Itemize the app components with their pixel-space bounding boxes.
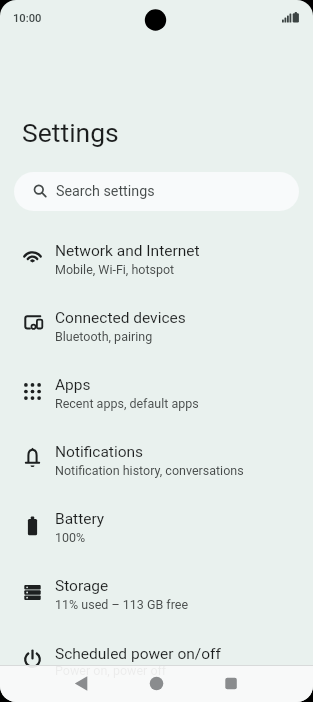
staticText: Storage: [55, 577, 109, 595]
button[interactable]: Storage: [0, 561, 313, 628]
staticText: Power on, power off: [55, 663, 167, 678]
staticText: Search settings: [56, 183, 155, 200]
button[interactable]: Search settings: [14, 172, 299, 211]
staticText: Apps: [55, 376, 91, 394]
staticText: Scheduled power on/off: [55, 645, 221, 663]
button[interactable]: [0, 665, 105, 702]
staticText: 10:00: [13, 12, 42, 25]
button[interactable]: Apps: [0, 360, 313, 427]
button[interactable]: Battery: [0, 494, 313, 561]
button[interactable]: [209, 665, 313, 702]
button[interactable]: [105, 665, 209, 702]
staticText: Network and Internet: [55, 242, 200, 260]
staticText: Recent apps, default apps: [55, 396, 199, 411]
staticText: Connected devices: [55, 309, 186, 327]
staticText: Settings: [22, 117, 119, 148]
staticText: 100%: [55, 530, 86, 545]
staticText: Notifications: [55, 443, 144, 461]
button[interactable]: Connected devices: [0, 293, 313, 360]
button[interactable]: Scheduled power on/off: [0, 628, 313, 695]
staticText: Battery: [55, 510, 105, 528]
staticText: Bluetooth, pairing: [55, 329, 153, 344]
staticText: Notification history, conversations: [55, 463, 244, 478]
button[interactable]: Notifications: [0, 427, 313, 494]
button[interactable]: Network and Internet: [0, 226, 313, 293]
staticText: 11% used – 113 GB free: [55, 597, 189, 612]
staticText: Mobile, Wi-Fi, hotspot: [55, 262, 175, 277]
